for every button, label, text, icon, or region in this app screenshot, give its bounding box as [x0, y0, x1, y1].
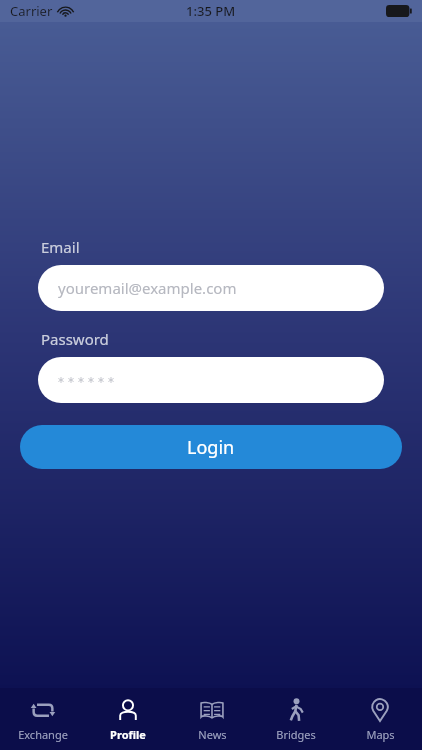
button[interactable]: Login: [20, 425, 402, 469]
staticText: Profile: [110, 727, 146, 742]
button[interactable]: [38, 357, 384, 403]
button[interactable]: Bridges: [254, 697, 338, 742]
staticText: Maps: [366, 727, 395, 742]
button[interactable]: Maps: [338, 697, 422, 742]
button[interactable]: youremail@example.com: [38, 265, 384, 311]
staticText: Login: [187, 435, 235, 460]
button[interactable]: Profile: [85, 697, 170, 742]
staticText: Exchange: [18, 727, 68, 742]
staticText: News: [198, 727, 227, 742]
staticText: Carrier: [10, 2, 53, 20]
staticText: Password: [41, 329, 109, 349]
button[interactable]: News: [170, 697, 254, 742]
staticText: Email: [41, 237, 80, 257]
button[interactable]: Exchange: [0, 697, 85, 742]
staticText: 1:35 PM: [186, 2, 236, 20]
staticText: Bridges: [276, 727, 316, 742]
staticText: youremail@example.com: [58, 278, 237, 298]
